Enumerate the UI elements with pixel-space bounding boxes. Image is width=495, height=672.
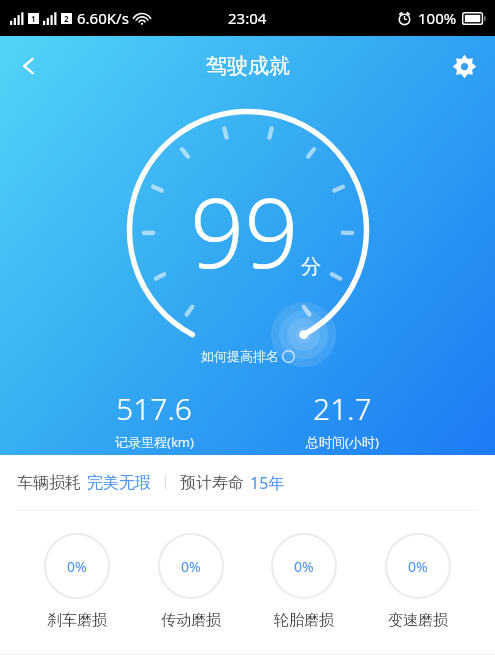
button[interactable]: 0% [40, 533, 114, 630]
staticText: 预计寿命 [180, 473, 244, 493]
staticText: 完美无瑕 [87, 473, 151, 493]
button[interactable]: Back [6, 43, 52, 89]
staticText: 517.6 [116, 388, 192, 429]
staticText: 传动磨损 [161, 611, 221, 630]
staticText: 如何提高排名 [201, 348, 279, 364]
staticText: 0% [67, 557, 87, 576]
staticText: 0% [181, 557, 201, 576]
staticText: 99 [190, 166, 299, 295]
staticText: 分 [301, 254, 321, 279]
staticText: 变速磨损 [388, 611, 448, 630]
staticText: 6.60K/s [77, 8, 129, 28]
staticText: 车辆损耗 [17, 473, 81, 493]
button[interactable]: 0% [267, 533, 341, 630]
staticText: 总时间(小时) [306, 433, 379, 451]
staticText: 0% [408, 557, 428, 576]
staticText: 15年 [250, 472, 285, 494]
button[interactable]: 0% [381, 533, 455, 630]
button[interactable]: 0% [154, 533, 228, 630]
staticText: 100% [418, 8, 457, 28]
staticText: 2 [64, 13, 69, 24]
staticText: 驾驶成就 [206, 53, 290, 79]
staticText: 记录里程(km) [115, 433, 194, 451]
button[interactable]: Settings [441, 43, 487, 89]
staticText: 轮胎磨损 [274, 611, 334, 630]
staticText: 23:04 [228, 8, 267, 28]
button[interactable]: 如何提高排名 [201, 348, 295, 364]
staticText: 刹车磨损 [47, 611, 107, 630]
staticText: 0% [294, 557, 314, 576]
staticText: 21.7 [313, 388, 372, 429]
staticText: 1 [31, 13, 36, 24]
